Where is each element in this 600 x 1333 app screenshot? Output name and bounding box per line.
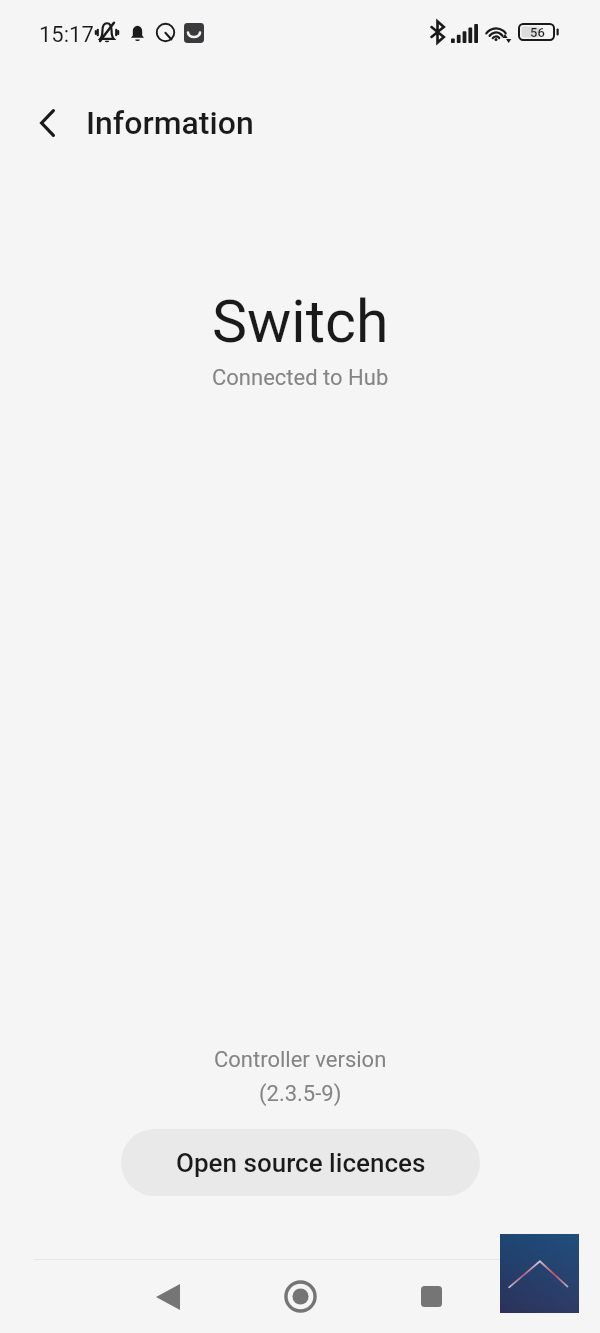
staticText: Open source licences <box>176 1148 426 1178</box>
staticText: Controller version <box>214 1047 387 1073</box>
button[interactable]: Home <box>276 1272 324 1320</box>
staticText: (2.3.5-9) <box>259 1081 342 1107</box>
button[interactable]: Back <box>144 1273 192 1321</box>
button[interactable]: Open source licences <box>121 1129 480 1196</box>
staticText: Switch <box>212 287 389 356</box>
button[interactable]: Floating window <box>500 1234 579 1313</box>
staticText: 15:17 <box>39 22 94 48</box>
staticText: Information <box>86 104 254 142</box>
button[interactable]: Recent apps <box>407 1272 455 1320</box>
staticText: 56 <box>530 25 545 40</box>
button[interactable]: Back <box>23 99 71 147</box>
staticText: Connected to Hub <box>212 365 389 391</box>
